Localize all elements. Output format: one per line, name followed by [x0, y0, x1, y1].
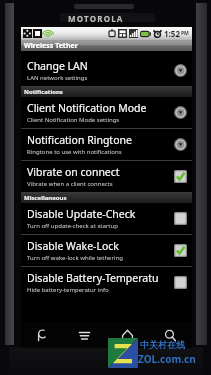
- staticText: Turn off update-check at startup: [27, 222, 118, 230]
- other: Open: [174, 64, 187, 77]
- staticText: Disable Wake-Lock: [27, 239, 119, 253]
- button[interactable]: Notification Ringtone: [21, 129, 192, 160]
- staticText: MOTOROLA: [68, 13, 124, 24]
- staticText: Client Notification Mode: [27, 101, 147, 115]
- button[interactable]: Search: [149, 322, 192, 348]
- button[interactable]: Disable Battery-Temperatu: [21, 267, 192, 298]
- staticText: ZOL.com.cn: [138, 352, 196, 366]
- staticText: Notification Ringtone: [27, 133, 132, 147]
- staticText: Wireless Tether: [24, 41, 78, 51]
- staticText: Hide battery-temperatur info: [27, 286, 109, 294]
- other: Open: [174, 106, 187, 119]
- button[interactable]: Back: [21, 322, 63, 348]
- other: Open: [174, 138, 187, 151]
- other: Enabled: [174, 244, 187, 257]
- staticText: PM: [181, 30, 189, 37]
- button[interactable]: Change LAN: [21, 55, 192, 86]
- button[interactable]: Home: [106, 322, 149, 348]
- other: Disabled: [174, 212, 187, 225]
- staticText: Vibrate on connect: [27, 165, 120, 179]
- button[interactable]: Vibrate on connect: [21, 161, 192, 192]
- staticText: Disable Battery-Temperatu: [27, 271, 159, 285]
- other: Enabled: [174, 170, 187, 183]
- staticText: Turn off wake-lock while tethering: [27, 254, 123, 262]
- staticText: 中关村在线: [140, 339, 185, 350]
- other: Disabled: [174, 276, 187, 289]
- button[interactable]: Disable Wake-Lock: [21, 235, 192, 266]
- staticText: LAN network settings: [27, 74, 88, 82]
- button[interactable]: Menu: [63, 322, 106, 348]
- staticText: Vibrate when a client connects: [27, 180, 113, 188]
- button[interactable]: Client Notification Mode: [21, 97, 192, 128]
- staticText: Client Notification Mode settings: [27, 116, 120, 124]
- staticText: Notifications: [24, 88, 63, 96]
- staticText: Disable Update-Check: [27, 207, 136, 221]
- staticText: 1:52: [164, 28, 180, 39]
- staticText: Change LAN: [27, 59, 88, 73]
- staticText: Ringtone to use with notifications: [27, 148, 122, 156]
- button[interactable]: Disable Update-Check: [21, 203, 192, 234]
- staticText: Miscellaneous: [24, 194, 67, 202]
